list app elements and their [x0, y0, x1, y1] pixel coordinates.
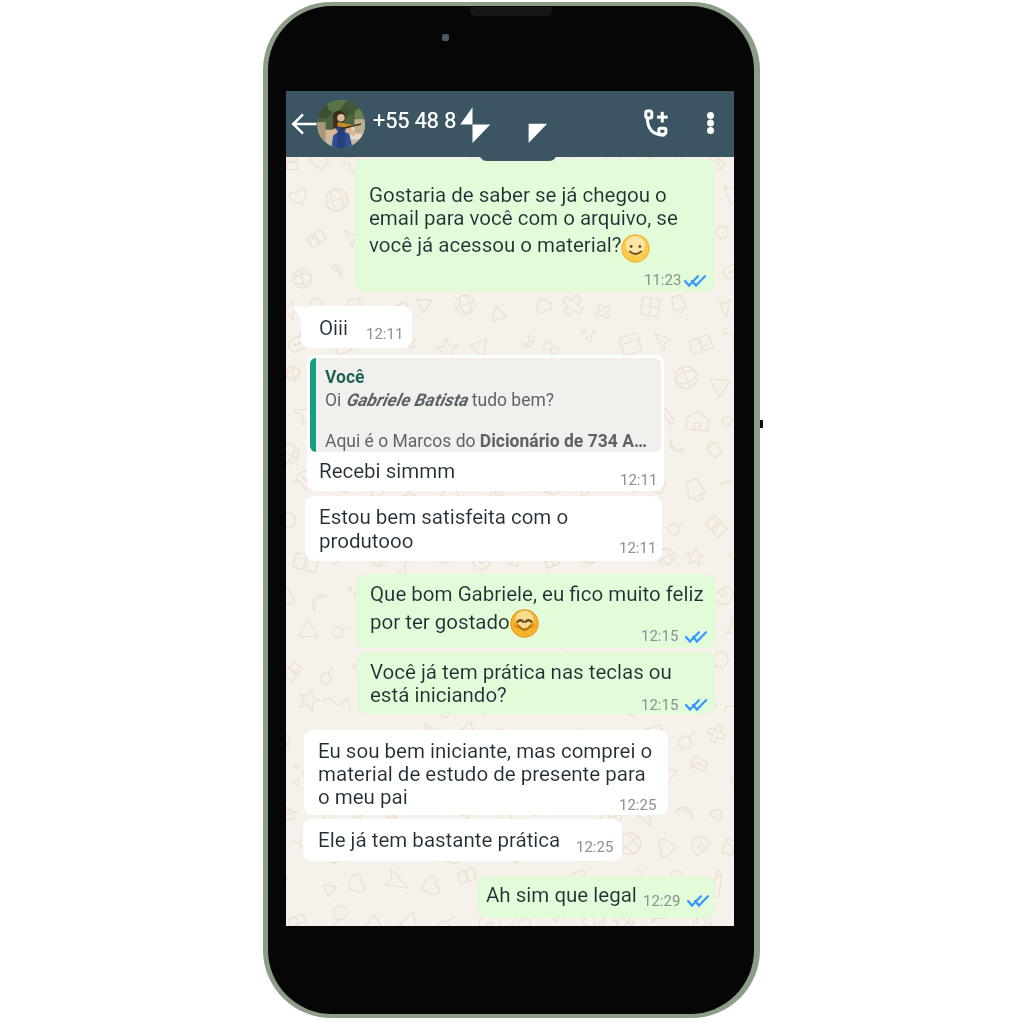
- staticText: o meu pai: [318, 785, 408, 809]
- staticText: Você já tem prática nas teclas ou: [370, 660, 672, 684]
- staticText: 12:15: [641, 627, 679, 645]
- staticText: produtooo: [319, 529, 414, 553]
- staticText: Gostaria de saber se já chegou o: [369, 183, 667, 207]
- staticText: Ah sim que legal: [486, 883, 637, 907]
- staticText: está iniciando?: [370, 683, 507, 707]
- button[interactable]: Gostaria de saber se já chegou o: [355, 159, 715, 292]
- button[interactable]: Você já tem prática nas teclas ou: [357, 652, 715, 714]
- staticText: 12:25: [619, 796, 657, 814]
- staticText: 12:11: [366, 325, 404, 343]
- button[interactable]: Ah sim que legal: [477, 876, 715, 918]
- staticText: Você: [325, 367, 365, 388]
- staticText: 11:23: [644, 271, 682, 289]
- staticText: Estou bem satisfeita com o: [319, 505, 569, 529]
- staticText: 12:25: [576, 838, 614, 856]
- button[interactable]: Eu sou bem iniciante, mas comprei o: [304, 730, 668, 815]
- staticText: Recebi simmm: [319, 459, 456, 483]
- button[interactable]: Ele já tem bastante prática: [303, 819, 622, 861]
- staticText: por ter gostado: [370, 610, 510, 634]
- staticText: Oi Gabriele Batista tudo bem?: [325, 390, 555, 411]
- staticText: Oiii: [319, 316, 349, 340]
- button[interactable]: Back: [286, 106, 322, 142]
- staticText: 12:15: [641, 696, 679, 714]
- button[interactable]: Estou bem satisfeita com o: [305, 496, 662, 561]
- staticText: +55 48 8: [373, 108, 457, 133]
- button[interactable]: Você: [307, 355, 664, 491]
- button[interactable]: Oiii: [301, 306, 412, 348]
- staticText: email para você com o arquivo, se: [369, 206, 678, 230]
- button[interactable]: Add call: [635, 101, 679, 145]
- staticText: Eu sou bem iniciante, mas comprei o: [318, 739, 653, 763]
- staticText: 12:29: [643, 892, 681, 910]
- button[interactable]: Contact photo: [317, 100, 365, 148]
- staticText: Ele já tem bastante prática: [318, 828, 561, 852]
- staticText: Que bom Gabriele, eu fico muito feliz: [370, 582, 704, 606]
- button[interactable]: +55 48 8: [373, 108, 457, 133]
- staticText: material de estudo de presente para: [318, 762, 646, 786]
- button[interactable]: More options: [691, 104, 729, 142]
- staticText: Aqui é o Marcos do Dicionário de 734 A…: [325, 431, 647, 452]
- staticText: 12:11: [620, 471, 658, 489]
- button[interactable]: Que bom Gabriele, eu fico muito feliz: [356, 574, 716, 648]
- staticText: 12:11: [619, 539, 657, 557]
- staticText: você já acessou o material?: [369, 233, 622, 257]
